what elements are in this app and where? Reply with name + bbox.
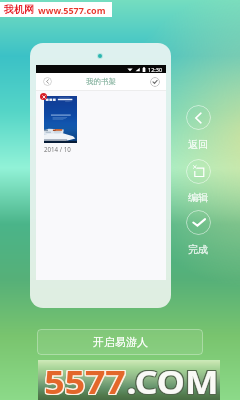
button[interactable] <box>44 96 77 143</box>
staticText: 5577 <box>43 360 125 400</box>
staticText: 12:30 <box>148 66 163 73</box>
staticText: .COM <box>128 361 220 400</box>
staticText: 2014 / 10 <box>44 145 71 153</box>
staticText: www.5577.com <box>38 4 106 16</box>
staticText: 5577 <box>43 359 125 399</box>
staticText: 开启易游人 <box>93 335 148 349</box>
staticText: .COM <box>125 361 217 400</box>
staticText: .COM <box>128 359 220 399</box>
staticText: 5577 <box>43 361 125 400</box>
staticText: 5577 <box>45 359 128 399</box>
button[interactable]: Delete <box>40 93 47 100</box>
button[interactable]: 开启易游人 <box>37 329 203 355</box>
staticText: .COM <box>128 360 220 400</box>
staticText: 返回 <box>188 138 208 151</box>
staticText: .COM <box>126 359 219 399</box>
staticText: 编辑 <box>188 191 208 204</box>
staticText: .COM <box>125 360 217 400</box>
staticText: .COM <box>125 359 217 399</box>
button[interactable]: Done <box>150 77 160 87</box>
staticText: 5577 <box>45 361 128 400</box>
staticText: 我机网 <box>4 3 34 16</box>
button[interactable]: 编辑 <box>186 159 211 184</box>
staticText: 5577 <box>44 359 126 399</box>
button[interactable]: Back <box>43 77 52 86</box>
button[interactable]: 完成 <box>186 210 211 235</box>
button[interactable]: 返回 <box>186 105 211 130</box>
staticText: 5577 <box>45 360 128 400</box>
staticText: .COM <box>126 360 219 400</box>
staticText: 5577 <box>44 360 126 400</box>
staticText: 我的书架 <box>86 77 116 86</box>
staticText: 完成 <box>188 243 208 256</box>
staticText: 5577 <box>44 361 126 400</box>
staticText: .COM <box>126 361 219 400</box>
